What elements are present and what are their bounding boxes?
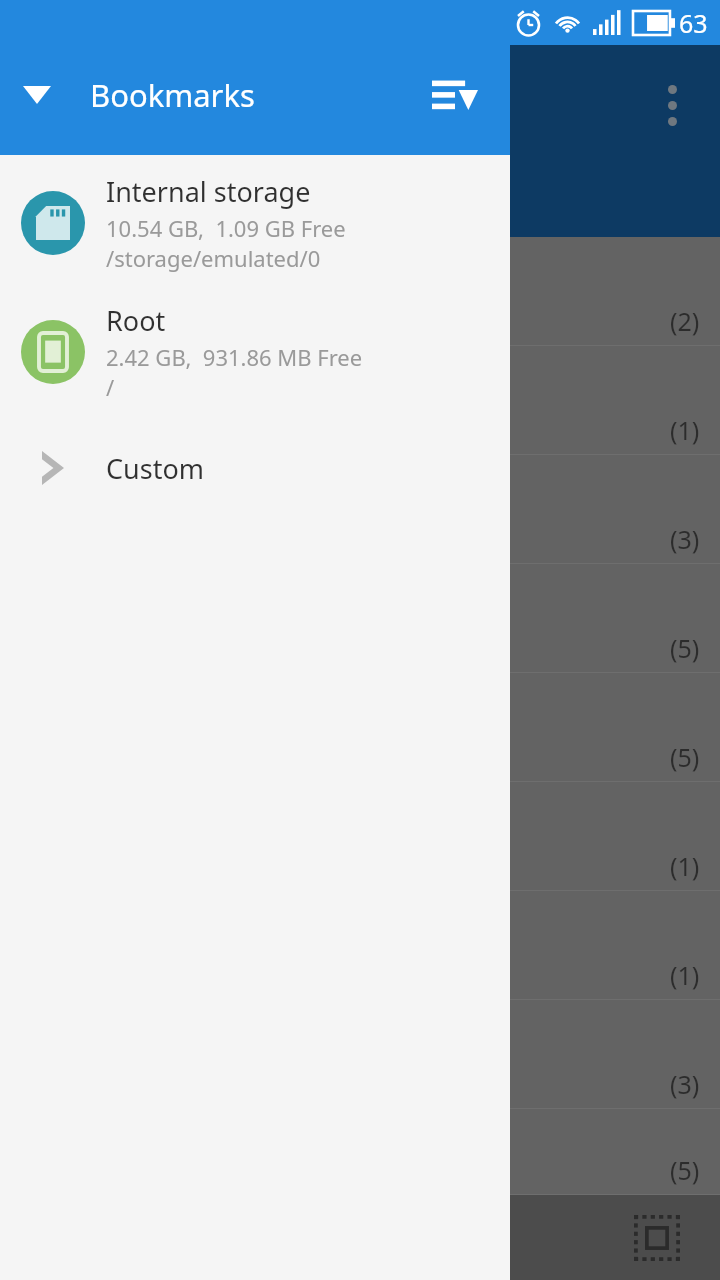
staticText: (3) <box>670 522 700 556</box>
staticText: 10.54 GB, 1.09 GB Free <box>106 213 346 243</box>
staticText: (5) <box>670 631 700 665</box>
button[interactable]: (1) <box>0 782 720 891</box>
staticText: Bookmarks <box>90 74 255 116</box>
staticText: (3) <box>670 1067 700 1101</box>
button[interactable]: (5) <box>0 673 720 782</box>
button[interactable]: Root <box>0 294 510 409</box>
button[interactable]: (3) <box>0 455 720 564</box>
button[interactable]: Custom <box>0 431 510 505</box>
staticText: 63 <box>679 6 708 40</box>
button[interactable]: More options <box>644 72 700 128</box>
button[interactable]: Select <box>634 1215 680 1261</box>
staticText: (5) <box>670 1153 700 1187</box>
button[interactable]: Internal storage <box>0 165 510 280</box>
button[interactable]: Expand bookmarks <box>10 68 64 122</box>
button[interactable]: (5) <box>0 1109 720 1195</box>
button[interactable]: (3) <box>0 1000 720 1109</box>
staticText: /storage/emulated/0 <box>106 243 321 273</box>
staticText: (1) <box>670 413 700 447</box>
button[interactable]: (2) <box>0 237 720 346</box>
staticText: (1) <box>670 958 700 992</box>
staticText: (1) <box>670 849 700 883</box>
button[interactable]: Sort <box>424 64 486 126</box>
staticText: (5) <box>670 740 700 774</box>
button[interactable]: (1) <box>0 891 720 1000</box>
staticText: / <box>106 372 115 402</box>
staticText: Internal storage <box>106 173 311 210</box>
button[interactable]: (5) <box>0 564 720 673</box>
staticText: Custom <box>106 450 205 487</box>
staticText: Root <box>106 302 166 339</box>
staticText: (2) <box>670 304 700 338</box>
button[interactable]: (1) <box>0 346 720 455</box>
staticText: 2.42 GB, 931.86 MB Free <box>106 342 363 372</box>
